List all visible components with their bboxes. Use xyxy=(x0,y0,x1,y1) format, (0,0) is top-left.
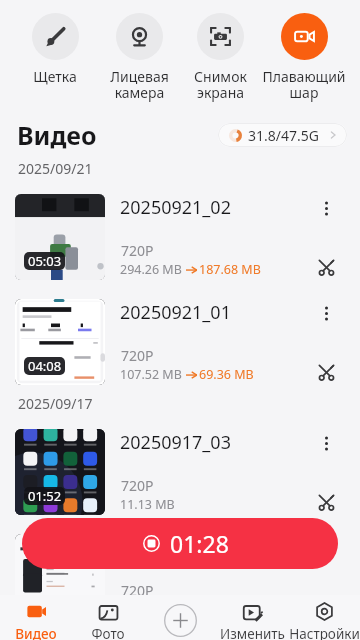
staticText: 01:28 xyxy=(170,528,229,559)
staticText: 04:08 xyxy=(28,357,62,375)
staticText: Плавающий шар xyxy=(262,67,346,102)
button[interactable]: Фото xyxy=(72,595,144,640)
staticText: 107.52 MB xyxy=(120,366,182,383)
button[interactable]: 20250826_01 xyxy=(0,524,360,629)
staticText: Фото xyxy=(91,625,125,640)
staticText: 2025/09/21 xyxy=(18,159,93,178)
button[interactable]: Видео xyxy=(0,595,72,640)
button[interactable]: Снимок экрана xyxy=(175,13,265,102)
button[interactable]: More options xyxy=(314,301,339,326)
staticText: 20250921_01 xyxy=(120,300,231,325)
staticText: Щетка xyxy=(33,67,77,86)
button[interactable]: 01:28 xyxy=(22,518,338,569)
staticText: Изменить xyxy=(220,625,285,640)
staticText: 31.8/47.5G xyxy=(248,126,319,145)
staticText: 11.13 MB xyxy=(120,496,175,513)
button[interactable]: Изменить xyxy=(216,595,288,640)
button[interactable]: Trim video xyxy=(314,255,339,280)
button[interactable]: Настройки xyxy=(288,595,360,640)
staticText: 69.36 MB xyxy=(199,366,254,383)
staticText: 720P xyxy=(121,346,154,365)
staticText: Настройки xyxy=(289,625,360,640)
button[interactable]: More options xyxy=(314,431,339,456)
staticText: 20250921_02 xyxy=(120,195,231,220)
staticText: 720P xyxy=(121,476,154,495)
staticText: Лицевая камера xyxy=(110,67,169,102)
staticText: 294.26 MB xyxy=(120,261,182,278)
staticText: Снимок экрана xyxy=(194,67,247,102)
staticText: 20250826_01 xyxy=(120,535,231,560)
button[interactable]: 31.8/47.5G xyxy=(218,123,347,147)
button[interactable]: 05:03 xyxy=(0,184,360,289)
button[interactable]: 01:52 xyxy=(0,419,360,524)
button[interactable]: Щетка xyxy=(10,13,100,86)
button[interactable]: Trim video xyxy=(314,360,339,385)
button[interactable]: Trim video xyxy=(314,595,339,620)
staticText: 20250917_03 xyxy=(120,430,231,455)
button[interactable]: More options xyxy=(314,536,339,561)
staticText: 05:03 xyxy=(28,252,62,270)
button[interactable]: 04:08 xyxy=(0,289,360,394)
staticText: 2025/09/17 xyxy=(18,394,93,413)
button[interactable]: Лицевая камера xyxy=(94,13,184,102)
button[interactable]: More options xyxy=(314,196,339,221)
button[interactable]: New recording xyxy=(162,602,198,638)
staticText: 187.68 MB xyxy=(199,261,261,278)
staticText: 720P xyxy=(121,241,154,260)
staticText: 01:52 xyxy=(28,487,62,505)
button[interactable]: Плавающий шар xyxy=(259,13,349,102)
button[interactable]: Trim video xyxy=(314,490,339,515)
staticText: Видео xyxy=(17,118,97,152)
staticText: 720P xyxy=(121,581,154,600)
staticText: Видео xyxy=(15,625,57,640)
